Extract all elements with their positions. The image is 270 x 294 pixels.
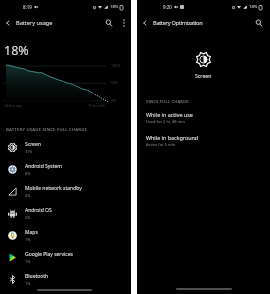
staticText: 8% — [25, 171, 31, 176]
staticText: 3% — [25, 193, 31, 198]
staticText: Bluetooth — [25, 273, 49, 280]
staticText: Android OS — [25, 207, 52, 214]
staticText: Used for 2 hr, 48 min — [146, 119, 185, 124]
staticText: 1% — [25, 281, 31, 286]
staticText: 14 hrs ago — [4, 103, 22, 108]
staticText: 1% — [25, 259, 31, 264]
button[interactable]: Back — [0, 15, 16, 31]
staticText: 18% — [4, 42, 29, 59]
staticText: 8:19 — [23, 4, 32, 10]
staticText: Mobile network standby — [25, 185, 82, 192]
button[interactable]: Maps — [0, 224, 131, 246]
button[interactable]: Search — [251, 15, 267, 31]
staticText: SINCE FULL CHARGE — [146, 99, 189, 105]
staticText: 50% — [111, 80, 119, 85]
staticText: 2% — [25, 215, 31, 220]
button[interactable]: Search — [101, 15, 117, 31]
button[interactable]: More options — [117, 16, 131, 30]
button[interactable]: Bluetooth — [0, 268, 131, 290]
staticText: Android System — [25, 163, 63, 170]
staticText: BATTERY USAGE SINCE FULL CHARGE — [6, 126, 88, 132]
staticText: While in active use — [146, 111, 193, 118]
staticText: 100% — [111, 63, 121, 68]
staticText: While in background — [146, 134, 199, 141]
staticText: Battery usage — [16, 19, 53, 27]
button[interactable]: Mobile network standby — [0, 180, 131, 202]
staticText: Screen — [25, 141, 41, 148]
staticText: Active for 5 min — [146, 142, 176, 147]
staticText: Maps — [25, 229, 38, 236]
staticText: 9:20 — [163, 4, 172, 10]
button[interactable]: Screen — [0, 136, 131, 158]
staticText: 31% — [25, 149, 33, 154]
button[interactable]: Back — [137, 15, 153, 31]
staticText: Google Play services — [25, 251, 73, 258]
staticText: 0% — [111, 98, 117, 103]
button[interactable]: Android System — [0, 158, 131, 180]
staticText: 18% — [110, 4, 119, 10]
staticText: 1% — [25, 237, 31, 242]
staticText: 13 hrs left — [88, 103, 105, 108]
staticText: 18% — [249, 4, 258, 10]
button[interactable]: Android OS — [0, 202, 131, 224]
button[interactable]: Google Play services — [0, 246, 131, 268]
staticText: Screen — [195, 72, 212, 79]
staticText: Battery Optimization — [153, 19, 203, 27]
